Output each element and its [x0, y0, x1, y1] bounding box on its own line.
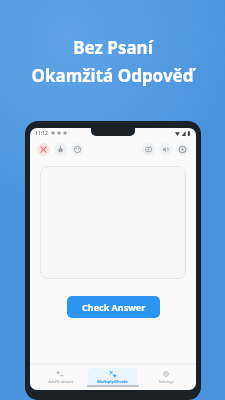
button[interactable]: Settings: [176, 143, 189, 156]
staticText: Settings: [158, 379, 174, 384]
button[interactable]: Check Answer: [67, 296, 160, 318]
button[interactable]: Camera: [142, 143, 155, 156]
staticText: Check Answer: [82, 301, 146, 313]
button[interactable]: Info: [71, 143, 84, 156]
staticText: Add/Subtract: [48, 379, 73, 384]
staticText: Multiply/Divide: [97, 379, 128, 384]
button[interactable]: Settings: [141, 368, 190, 386]
button[interactable]: Add/Subtract: [36, 368, 84, 386]
staticText: Bez Psaní: [73, 36, 153, 59]
staticText: 11:12: [35, 130, 48, 137]
button[interactable]: Hint: [54, 143, 67, 156]
staticText: Okamžitá Odpověď: [31, 64, 194, 87]
button[interactable]: Clear: [37, 143, 50, 156]
button[interactable]: Multiply/Divide: [88, 368, 137, 386]
button[interactable]: Sound: [159, 143, 172, 156]
